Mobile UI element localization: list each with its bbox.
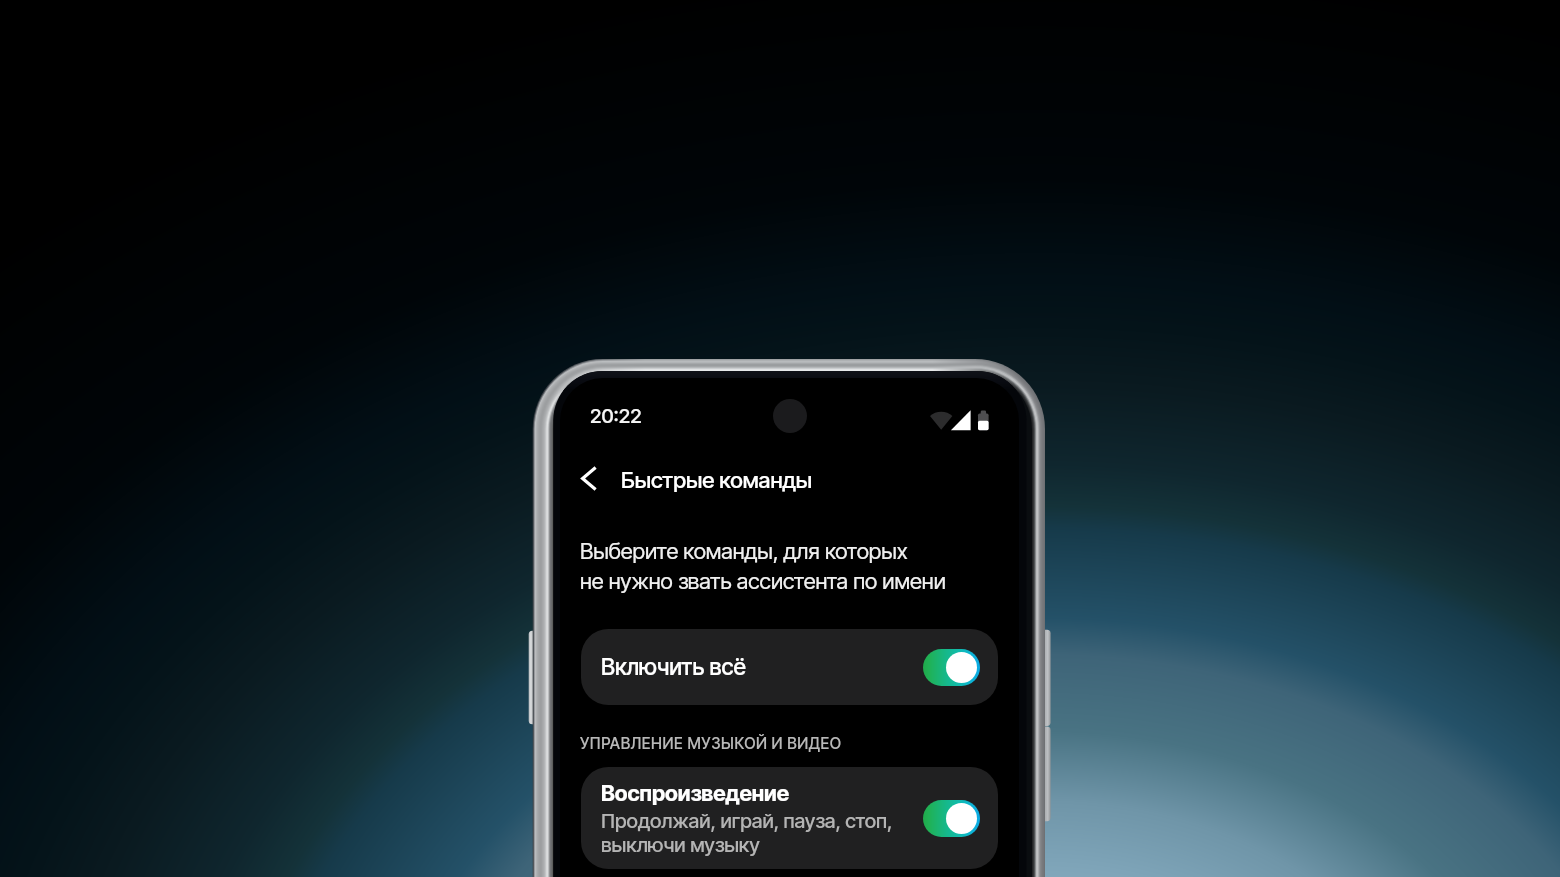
button[interactable]: Переключатель: [923, 800, 980, 837]
button[interactable]: Назад: [566, 456, 610, 500]
staticText: Быстрые команды: [621, 466, 813, 493]
staticText: Продолжай, играй, пауза, стоп, выключи м…: [601, 808, 893, 857]
button[interactable]: Воспроизведение: [581, 767, 998, 869]
staticText: Выберите команды, для которых не нужно з…: [580, 538, 946, 595]
staticText: Воспроизведение: [601, 780, 790, 806]
staticText: 20:22: [590, 404, 642, 428]
button[interactable]: Переключатель: [923, 649, 980, 686]
staticText: Включить всё: [601, 653, 746, 681]
staticText: УПРАВЛЕНИЕ МУЗЫКОЙ И ВИДЕО: [580, 734, 842, 753]
button[interactable]: Включить всё: [581, 629, 998, 705]
